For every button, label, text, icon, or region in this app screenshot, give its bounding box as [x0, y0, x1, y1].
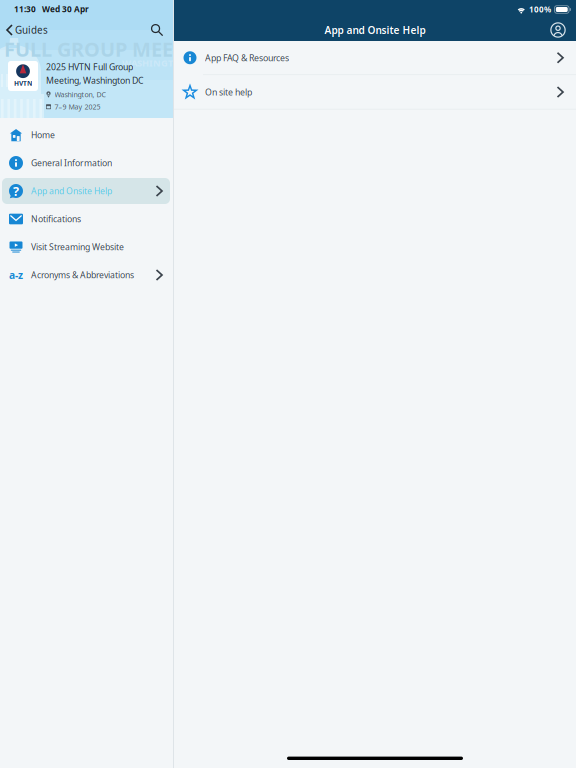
staticText: 100% [529, 4, 551, 15]
staticText: Visit Streaming Website [31, 241, 124, 253]
button[interactable]: General Information [0, 149, 173, 177]
staticText: 7–9 May 2025 [54, 102, 100, 111]
staticText: Washington, DC [54, 90, 105, 99]
button[interactable]: a-z [0, 261, 173, 289]
button[interactable]: Visit Streaming Website [0, 233, 173, 261]
staticText: Meeting, Washington DC [46, 74, 144, 86]
button[interactable]: Account [550, 19, 576, 41]
staticText: On site help [205, 86, 252, 98]
button[interactable]: Home [0, 121, 173, 149]
staticText: Notifications [31, 213, 81, 225]
button[interactable]: Search [141, 18, 173, 42]
button[interactable]: ? [0, 177, 173, 205]
staticText: 2025 HVTN Full Group [46, 61, 133, 73]
button[interactable]: On site help [174, 75, 576, 109]
button[interactable]: App FAQ & Resources [174, 41, 576, 74]
staticText: Acronyms & Abbreviations [31, 269, 134, 281]
staticText: App and Onsite Help [324, 23, 425, 37]
staticText: Wed 30 Apr [42, 3, 89, 15]
staticText: ? [13, 182, 19, 200]
staticText: App and Onsite Help [31, 185, 112, 197]
button[interactable]: Guides [0, 18, 56, 42]
staticText: FULL GROUP MEETI [4, 35, 193, 63]
staticText: General Information [31, 157, 112, 169]
staticText: a-z [9, 268, 23, 282]
staticText: Home [31, 129, 55, 141]
staticText: App FAQ & Resources [205, 52, 289, 64]
staticText: WASHINGT [122, 57, 173, 69]
staticText: Guides [15, 23, 48, 37]
staticText: 11:30 [14, 3, 36, 15]
button[interactable]: Notifications [0, 205, 173, 233]
staticText: HVTN [14, 79, 32, 88]
